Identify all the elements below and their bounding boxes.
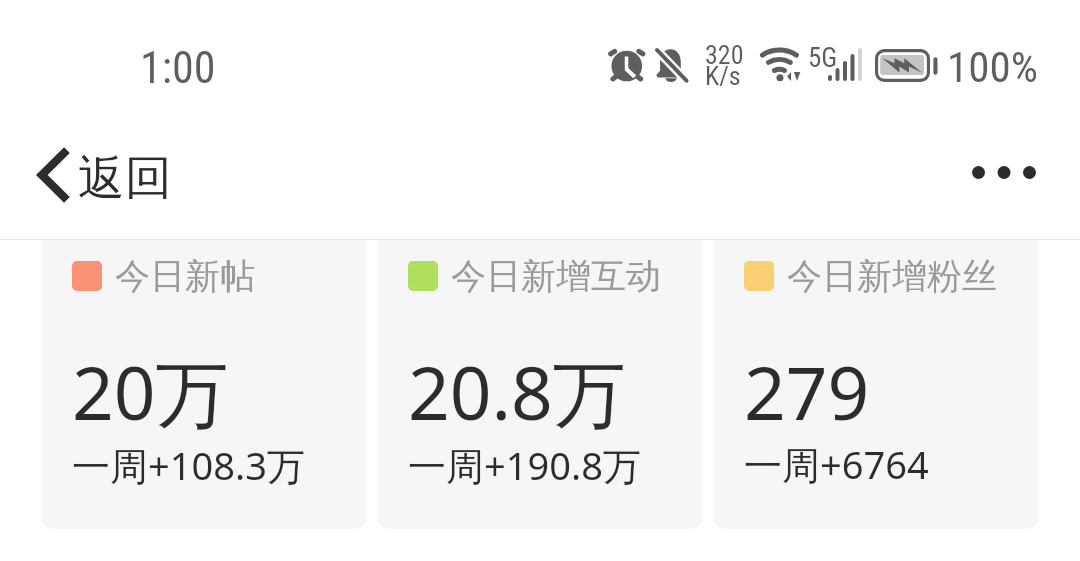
staticText: 一周+108.3万 (72, 439, 305, 491)
button[interactable]: More options (950, 140, 1058, 205)
staticText: 今日新帖 (115, 254, 255, 298)
staticText: 一周+6764 (744, 438, 929, 490)
button[interactable]: 今日新增互动 (378, 240, 702, 529)
staticText: 1:00 (140, 42, 216, 94)
staticText: 今日新增粉丝 (787, 254, 997, 298)
staticText: 5G (808, 42, 838, 74)
staticText: 20万 (72, 342, 229, 442)
staticText: 100% (947, 42, 1038, 92)
staticText: 279 (744, 342, 870, 441)
staticText: 320 (705, 40, 744, 70)
staticText: 20.8万 (408, 342, 626, 442)
staticText: 返回 (78, 149, 172, 208)
button[interactable]: Back (0, 131, 196, 218)
other: Back (37, 146, 71, 204)
button[interactable]: 今日新增粉丝 (714, 240, 1038, 529)
staticText: K/s (705, 61, 741, 91)
staticText: 一周+190.8万 (408, 439, 641, 491)
staticText: 今日新增互动 (451, 254, 661, 298)
button[interactable]: 今日新帖 (42, 240, 366, 529)
